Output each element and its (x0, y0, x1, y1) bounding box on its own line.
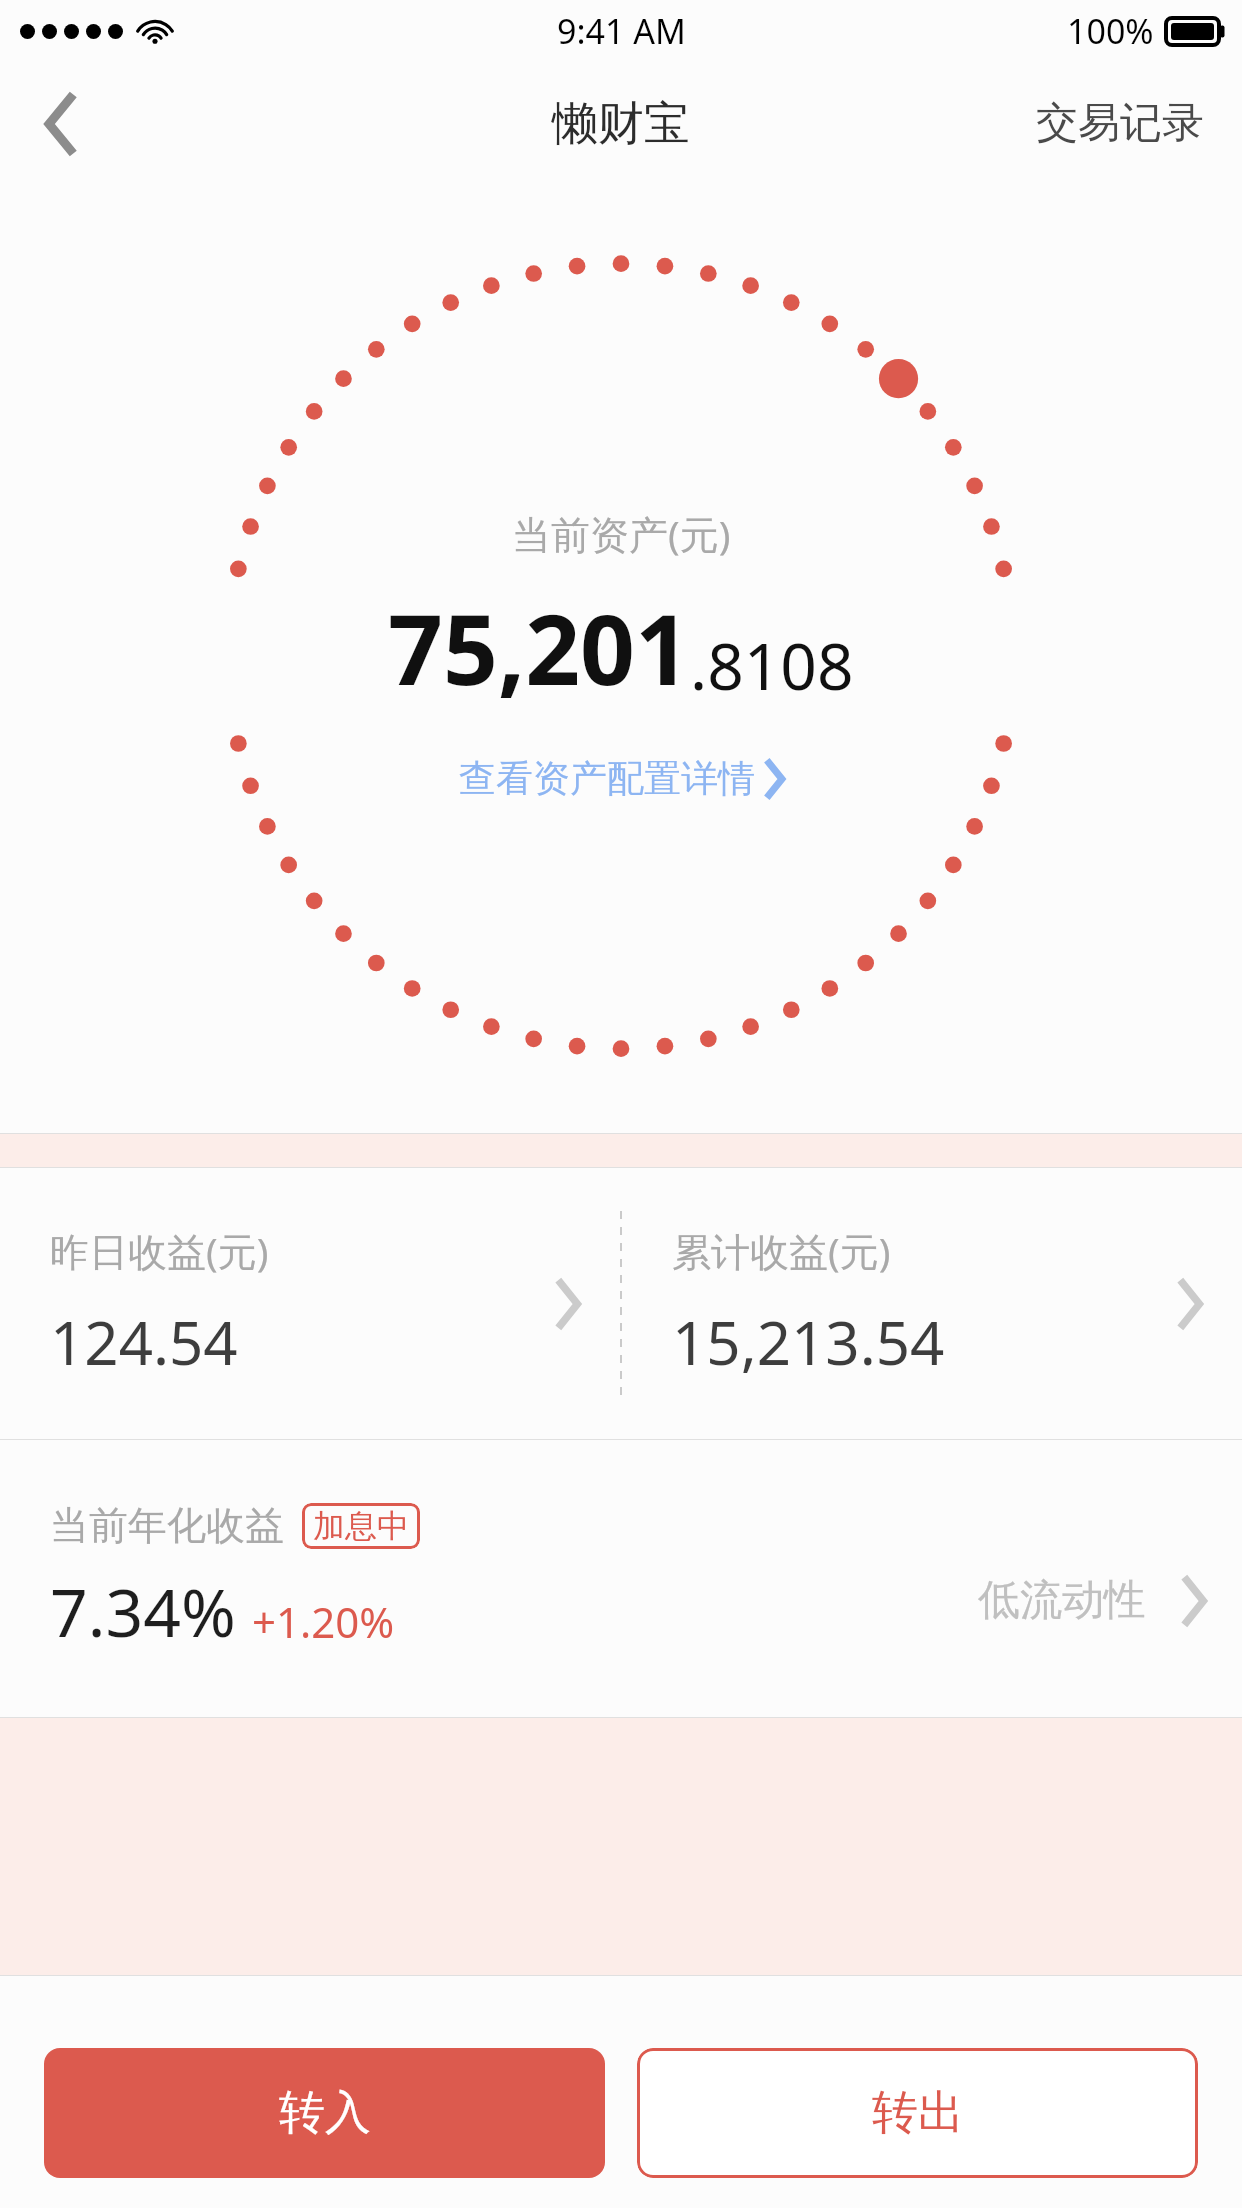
button[interactable]: 转入 (44, 2048, 605, 2178)
staticText: 当前年化收益 (50, 1501, 284, 1550)
staticText: 累计收益(元) (672, 1224, 891, 1277)
button[interactable]: 转出 (637, 2048, 1198, 2178)
staticText: 124.54 (50, 1301, 238, 1383)
staticText: 懒财宝 (552, 95, 690, 153)
button[interactable]: 交易记录 (998, 62, 1242, 185)
staticText: 75,201 (388, 582, 690, 713)
staticText: 转入 (279, 2084, 371, 2142)
staticText: 当前资产(元) (512, 507, 731, 560)
staticText: 交易记录 (1036, 97, 1204, 150)
button[interactable]: 昨日收益(元) (0, 1168, 620, 1439)
button[interactable]: 当前年化收益 (0, 1440, 1242, 1717)
staticText: .8108 (690, 622, 854, 709)
button[interactable]: 查看资产配置详情 (445, 745, 798, 812)
staticText: 昨日收益(元) (50, 1224, 269, 1277)
staticText: 低流动性 (978, 1574, 1146, 1627)
staticText: +1.20% (252, 1593, 395, 1650)
staticText: 15,213.54 (672, 1301, 945, 1383)
button[interactable]: Back (0, 62, 120, 185)
staticText: 转出 (872, 2084, 964, 2142)
staticText: 查看资产配置详情 (459, 755, 755, 802)
staticText: 100% (1067, 8, 1154, 54)
button[interactable]: 累计收益(元) (622, 1168, 1242, 1439)
staticText: 7.34% (50, 1566, 236, 1656)
staticText: 加息中 (313, 1506, 409, 1546)
staticText: 9:41 AM (557, 8, 686, 54)
